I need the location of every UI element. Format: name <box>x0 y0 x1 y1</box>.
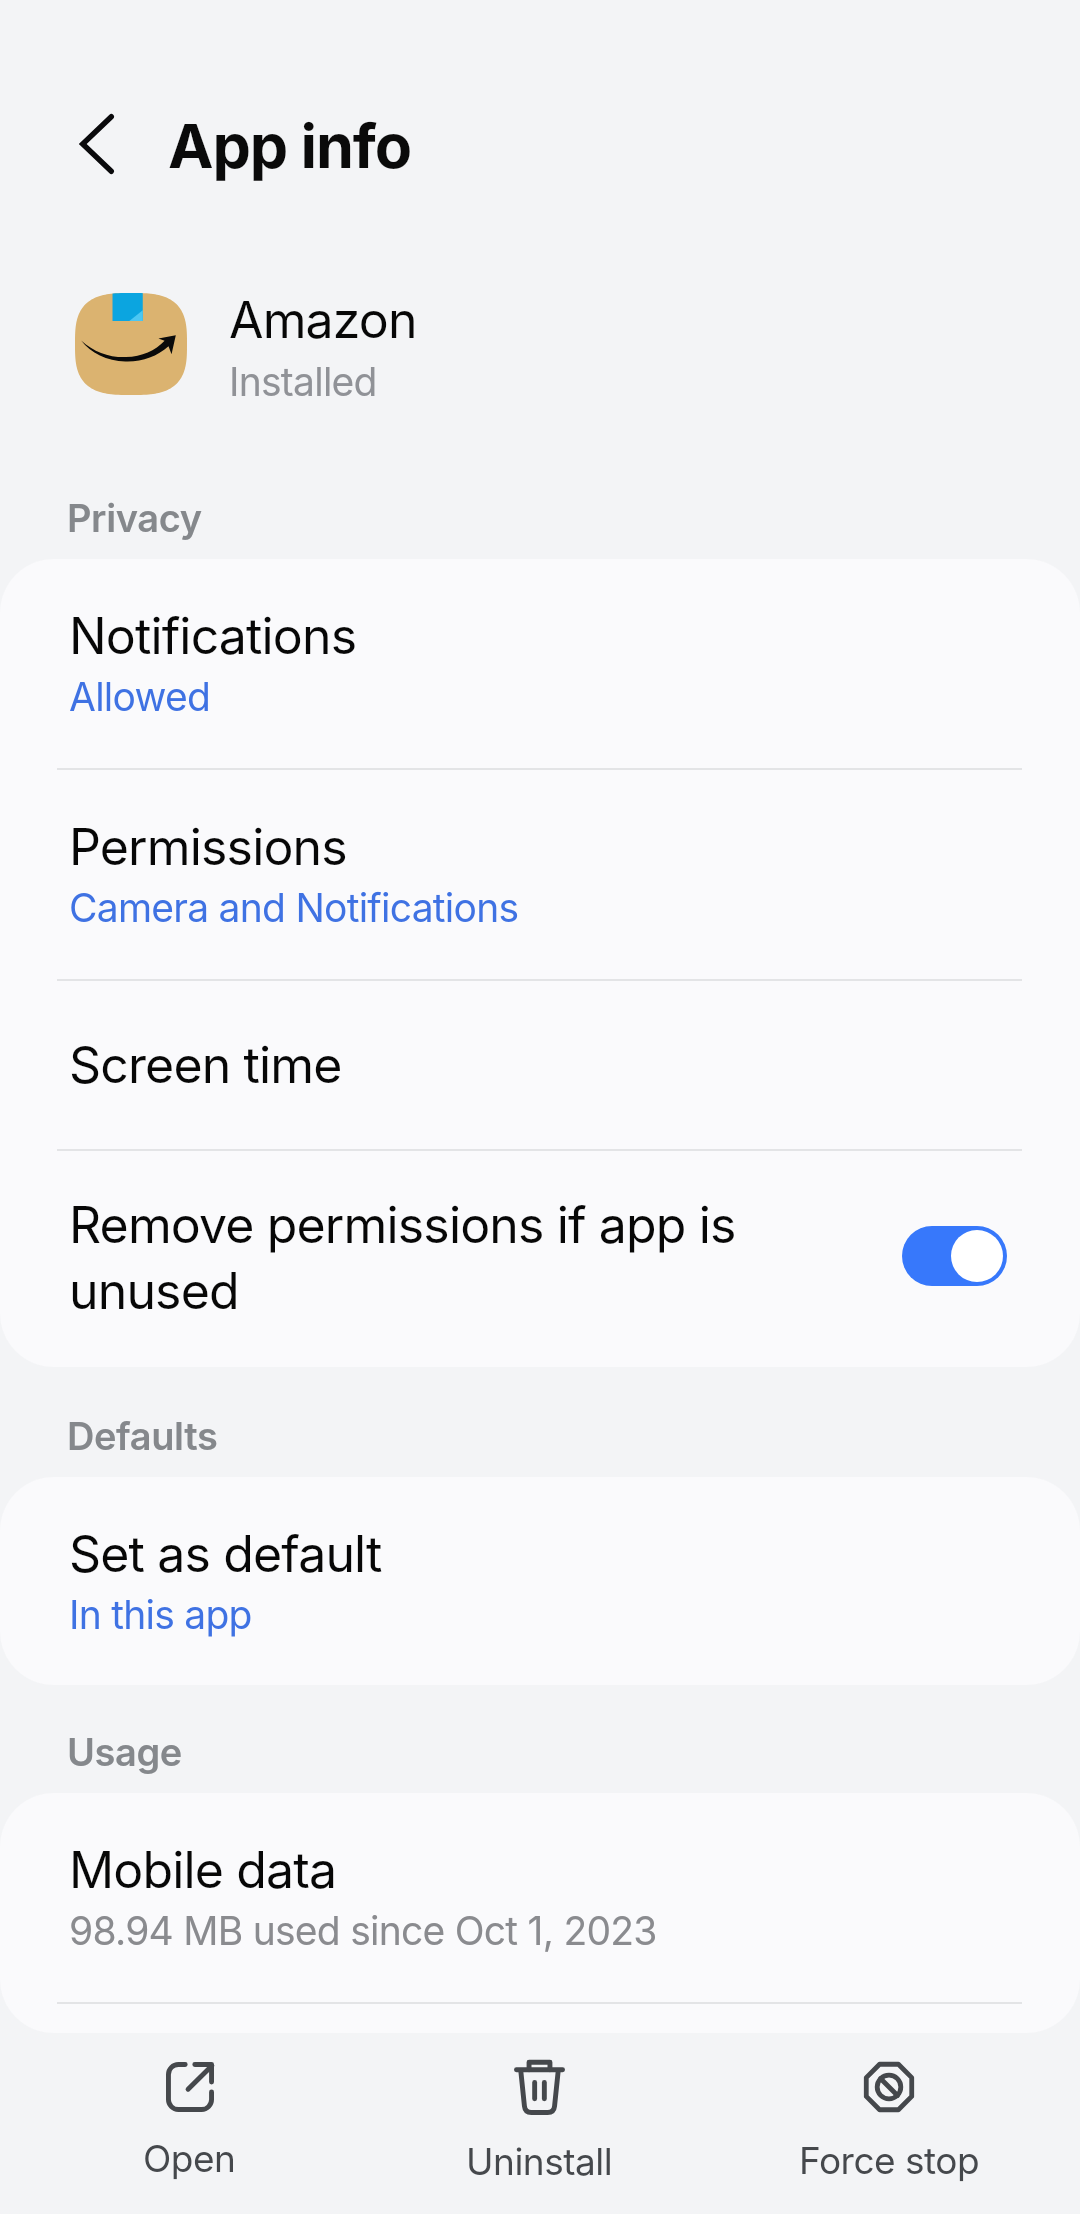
staticText: Uninstall <box>466 2138 613 2184</box>
button[interactable]: Open <box>15 2033 364 2209</box>
button[interactable]: Uninstall <box>364 2033 714 2209</box>
staticText: Defaults <box>67 1413 218 1459</box>
button[interactable]: Permissions <box>0 770 1080 979</box>
staticText: Allowed <box>69 673 211 721</box>
staticText: Set as default <box>69 1524 382 1584</box>
staticText: Mobile data <box>69 1840 337 1900</box>
staticText: Installed <box>229 359 377 405</box>
staticText: App info <box>168 104 411 184</box>
staticText: In this app <box>69 1591 252 1639</box>
staticText: Permissions <box>69 817 347 877</box>
staticText: Open <box>143 2135 236 2181</box>
staticText: Camera and Notifications <box>69 884 519 932</box>
staticText: Remove permissions if app is unused <box>69 1190 862 1322</box>
button[interactable]: Screen time <box>0 981 1080 1149</box>
button[interactable]: Force stop <box>714 2033 1064 2209</box>
button[interactable]: Set as default <box>0 1477 1080 1685</box>
button[interactable]: Navigate up <box>57 104 137 184</box>
staticText: Privacy <box>67 495 202 541</box>
staticText: Screen time <box>69 1035 342 1095</box>
staticText: Amazon <box>229 292 417 350</box>
staticText: 98.94 MB used since Oct 1, 2023 <box>69 1907 657 1955</box>
staticText: Usage <box>67 1729 182 1775</box>
staticText: Force stop <box>799 2137 980 2183</box>
button[interactable]: Mobile data <box>0 1793 1080 2002</box>
button[interactable]: Amazon <box>0 270 1080 415</box>
button[interactable]: Notifications <box>0 559 1080 768</box>
button[interactable]: Remove permissions if app is unused <box>0 1151 1080 1367</box>
staticText: Notifications <box>69 606 357 666</box>
